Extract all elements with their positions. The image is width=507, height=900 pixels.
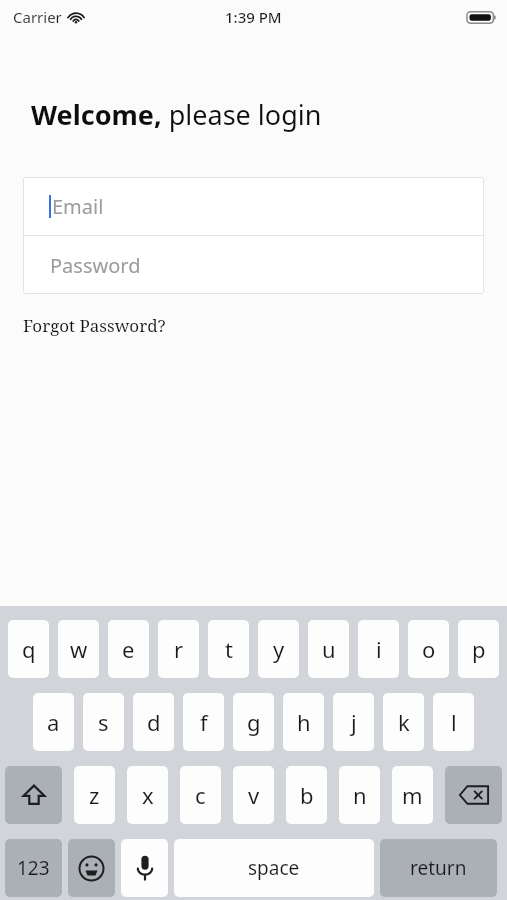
staticText: f [200, 707, 208, 737]
staticText: r [174, 634, 184, 664]
button[interactable]: Email [23, 177, 484, 235]
staticText: p [472, 634, 486, 664]
staticText: space [248, 855, 300, 881]
staticText: d [147, 707, 161, 737]
button[interactable]: k [383, 693, 424, 751]
staticText: Password [50, 252, 141, 279]
staticText: h [297, 707, 311, 737]
button[interactable]: Backspace [445, 766, 502, 824]
staticText: j [351, 707, 357, 737]
button[interactable]: Emoji [68, 839, 115, 897]
button[interactable]: o [408, 620, 449, 678]
staticText: e [122, 634, 135, 664]
button[interactable]: q [8, 620, 49, 678]
button[interactable]: v [233, 766, 274, 824]
staticText: k [398, 707, 410, 737]
staticText: Carrier [13, 7, 62, 27]
staticText: x [142, 780, 154, 810]
button[interactable]: e [108, 620, 149, 678]
staticText: return [410, 855, 467, 881]
button[interactable]: f [183, 693, 224, 751]
button[interactable]: b [286, 766, 327, 824]
staticText: Forgot Password? [23, 314, 166, 337]
button[interactable]: Shift [5, 766, 62, 824]
button[interactable]: Forgot Password? [23, 314, 166, 337]
button[interactable]: t [208, 620, 249, 678]
staticText: n [353, 780, 367, 810]
staticText: a [47, 707, 60, 737]
staticText: l [451, 707, 457, 737]
staticText: Email [52, 193, 104, 220]
button[interactable]: Dictation [121, 839, 168, 897]
staticText: q [22, 634, 36, 664]
button[interactable]: return [380, 839, 497, 897]
button[interactable]: m [392, 766, 433, 824]
staticText: 123 [17, 855, 50, 881]
button[interactable]: y [258, 620, 299, 678]
button[interactable]: c [180, 766, 221, 824]
staticText: m [402, 780, 423, 810]
button[interactable]: g [233, 693, 274, 751]
staticText: y [273, 634, 285, 664]
staticText: c [195, 780, 206, 810]
staticText: z [89, 780, 100, 810]
staticText: w [70, 634, 88, 664]
button[interactable]: space [174, 839, 374, 897]
button[interactable]: h [283, 693, 324, 751]
staticText: b [300, 780, 314, 810]
button[interactable]: n [339, 766, 380, 824]
button[interactable]: s [83, 693, 124, 751]
staticText: v [248, 780, 260, 810]
button[interactable]: i [358, 620, 399, 678]
button[interactable]: u [308, 620, 349, 678]
button[interactable]: a [33, 693, 74, 751]
staticText: u [322, 634, 336, 664]
button[interactable]: z [74, 766, 115, 824]
button[interactable]: Password [23, 236, 484, 294]
staticText: t [225, 634, 233, 664]
button[interactable]: j [333, 693, 374, 751]
staticText: g [247, 707, 261, 737]
button[interactable]: p [458, 620, 499, 678]
staticText: o [422, 634, 436, 664]
button[interactable]: d [133, 693, 174, 751]
staticText: Welcome, please login [31, 96, 322, 133]
button[interactable]: r [158, 620, 199, 678]
button[interactable]: l [433, 693, 474, 751]
button[interactable]: 123 [5, 839, 62, 897]
staticText: i [376, 634, 382, 664]
staticText: s [98, 707, 109, 737]
button[interactable]: w [58, 620, 99, 678]
staticText: 1:39 PM [225, 7, 282, 27]
button[interactable]: x [127, 766, 168, 824]
